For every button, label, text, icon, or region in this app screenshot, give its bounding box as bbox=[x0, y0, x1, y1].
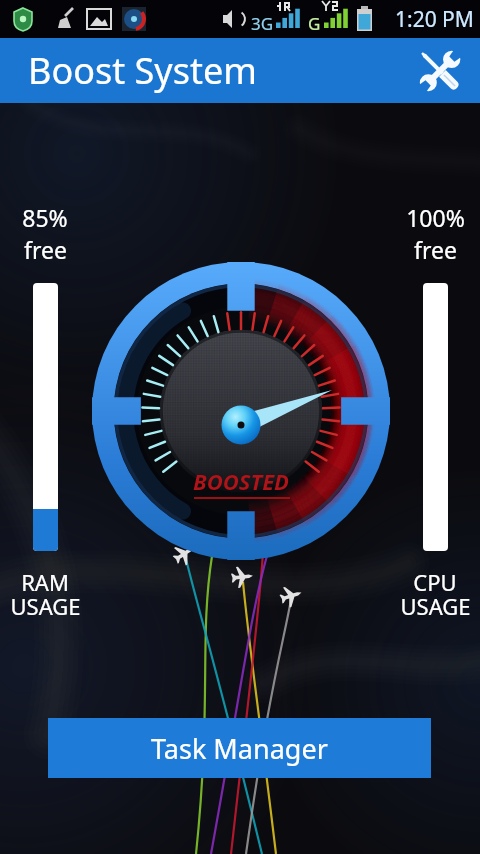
staticText: Boost System bbox=[28, 46, 257, 95]
staticText: 3G bbox=[251, 12, 274, 35]
staticText: free bbox=[24, 234, 67, 265]
staticText: 1:20 PM bbox=[395, 5, 474, 34]
staticText: USAGE bbox=[400, 591, 471, 621]
staticText: BOOSTED bbox=[193, 466, 290, 496]
button[interactable]: Task Manager bbox=[48, 718, 431, 778]
staticText: Task Manager bbox=[151, 730, 328, 767]
staticText: 85% bbox=[22, 202, 68, 233]
staticText: CPU bbox=[413, 567, 457, 597]
button[interactable]: Tools bbox=[412, 43, 468, 99]
staticText: free bbox=[414, 234, 457, 265]
staticText: RAM bbox=[21, 567, 69, 597]
staticText: USAGE bbox=[10, 591, 81, 621]
staticText: G bbox=[308, 12, 321, 35]
staticText: 100% bbox=[406, 202, 465, 233]
